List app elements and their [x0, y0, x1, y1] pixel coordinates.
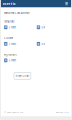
staticText: Create	[9, 42, 16, 46]
button[interactable]: List	[37, 41, 45, 46]
staticText: Cluster	[4, 36, 13, 40]
button[interactable]: List	[37, 25, 45, 30]
staticText: Create	[9, 26, 16, 29]
staticText: Create	[9, 59, 16, 62]
button[interactable]: Create	[4, 25, 16, 30]
staticText: Welcome CSM Admin	[4, 11, 30, 15]
staticText: List	[41, 26, 45, 29]
button[interactable]: Create	[4, 41, 16, 46]
staticText: Version 1.0.0	[55, 111, 68, 114]
staticText: List	[41, 42, 45, 46]
staticText: Template	[4, 20, 14, 23]
staticText: Agreement	[4, 53, 17, 56]
staticText: © 2023 Xcertis Inc.	[4, 111, 24, 114]
button[interactable]: View Chart	[14, 72, 31, 79]
staticText: View Chart	[15, 74, 29, 77]
button[interactable]: Create	[4, 58, 16, 63]
staticText: xcertis	[3, 1, 16, 6]
button[interactable]: Menu	[64, 1, 69, 6]
